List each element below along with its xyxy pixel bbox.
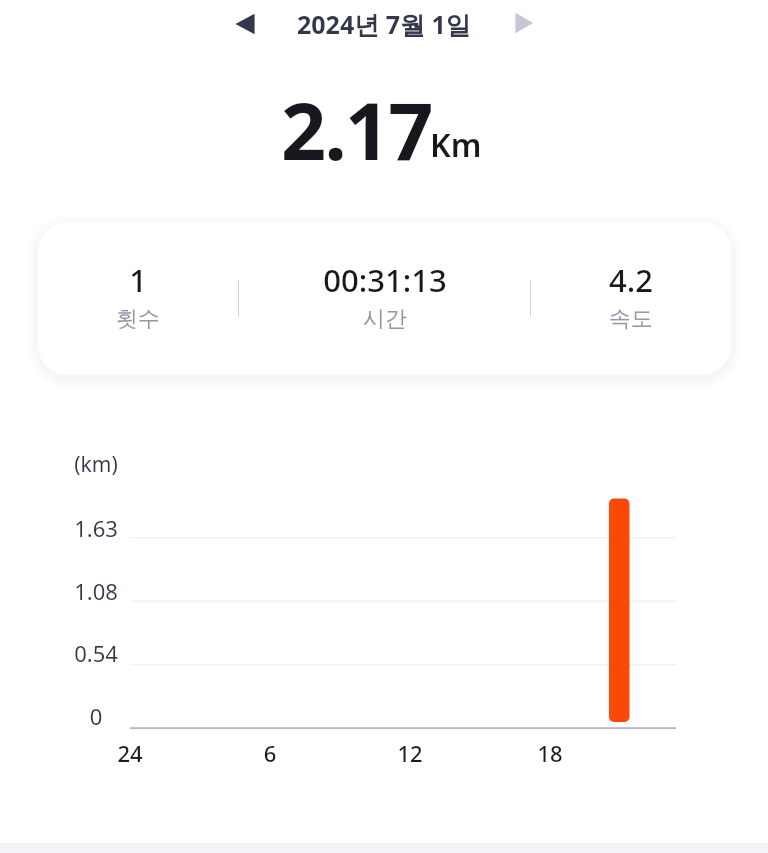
button[interactable]: 4.2: [531, 222, 731, 375]
staticText: 0: [16, 701, 176, 731]
staticText: 1.08: [16, 576, 176, 606]
button[interactable]: Next day: [500, 0, 546, 46]
staticText: Km: [430, 123, 482, 167]
staticText: 18: [510, 738, 590, 768]
staticText: 6: [230, 738, 310, 768]
staticText: 12: [370, 738, 450, 768]
staticText: 0.54: [16, 638, 176, 668]
staticText: 00:31:13: [323, 259, 447, 301]
staticText: 2.17: [281, 76, 432, 184]
button[interactable]: 1: [38, 222, 238, 375]
button[interactable]: 00:31:13: [239, 222, 530, 375]
button[interactable]: Previous day: [223, 1, 269, 47]
staticText: 시간: [363, 305, 407, 333]
staticText: 4.2: [609, 259, 653, 301]
staticText: 24: [90, 738, 170, 768]
staticText: 횟수: [116, 305, 160, 333]
staticText: (km): [16, 450, 176, 479]
staticText: 속도: [609, 305, 653, 333]
staticText: 2024년 7월 1일: [297, 7, 471, 41]
staticText: 1.63: [16, 513, 176, 543]
staticText: 1: [129, 259, 147, 301]
